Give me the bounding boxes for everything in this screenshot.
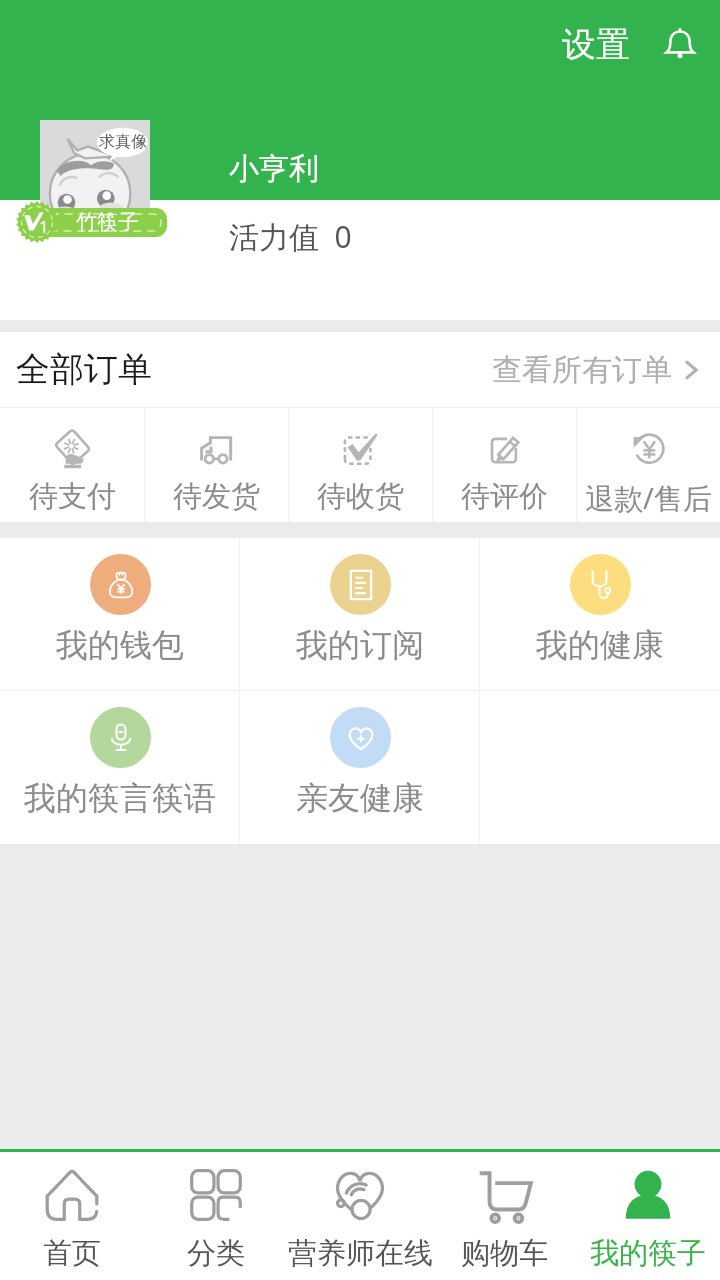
staticText: 活力值 0 (229, 216, 352, 257)
staticText: 待收货 (317, 478, 404, 515)
button[interactable]: 我的健康 (480, 538, 720, 690)
button[interactable]: 购物车 (432, 1152, 576, 1280)
staticText: 待支付 (29, 478, 116, 515)
staticText: 求真像 (99, 132, 147, 152)
staticText: 营养师在线 (288, 1235, 432, 1272)
button[interactable]: 营养师在线 (288, 1152, 432, 1280)
staticText: 我的筷子 (590, 1235, 706, 1272)
button[interactable]: 分类 (144, 1152, 288, 1280)
staticText: 我的筷言筷语 (24, 778, 216, 818)
staticText: 竹筷子 (76, 209, 139, 235)
button[interactable]: 退款/售后 (577, 408, 720, 522)
button[interactable]: 竹筷子 (22, 208, 167, 237)
button[interactable]: 全部订单 (0, 332, 720, 407)
staticText: 待发货 (173, 478, 260, 515)
staticText: 全部订单 (16, 348, 152, 391)
button[interactable]: 待收货 (289, 408, 432, 522)
button[interactable]: Notifications (652, 16, 708, 72)
staticText: 我的钱包 (56, 625, 184, 665)
staticText: 分类 (187, 1235, 245, 1272)
button[interactable]: 待评价 (433, 408, 576, 522)
staticText: 查看所有订单 (492, 351, 672, 389)
staticText: 首页 (43, 1235, 101, 1272)
button[interactable]: 我的钱包 (0, 538, 240, 690)
staticText: 亲友健康 (296, 778, 424, 818)
staticText: 我的订阅 (296, 625, 424, 665)
staticText: 小亨利 (229, 150, 319, 188)
staticText: 设置 (562, 23, 630, 66)
staticText: 我的健康 (536, 625, 664, 665)
button[interactable]: 待支付 (0, 408, 144, 522)
button[interactable]: 首页 (0, 1152, 144, 1280)
button[interactable]: 我的筷子 (576, 1152, 720, 1280)
button[interactable]: 亲友健康 (240, 691, 480, 843)
button[interactable]: 设置 (554, 17, 638, 72)
staticText: 待评价 (461, 478, 548, 515)
button[interactable]: 待发货 (145, 408, 288, 522)
staticText: 退款/售后 (585, 478, 712, 518)
staticText: 1 (39, 215, 49, 238)
button[interactable]: 我的订阅 (240, 538, 480, 690)
staticText: 购物车 (461, 1235, 548, 1272)
button[interactable]: Avatar (40, 120, 150, 208)
button[interactable]: 我的筷言筷语 (0, 691, 240, 843)
